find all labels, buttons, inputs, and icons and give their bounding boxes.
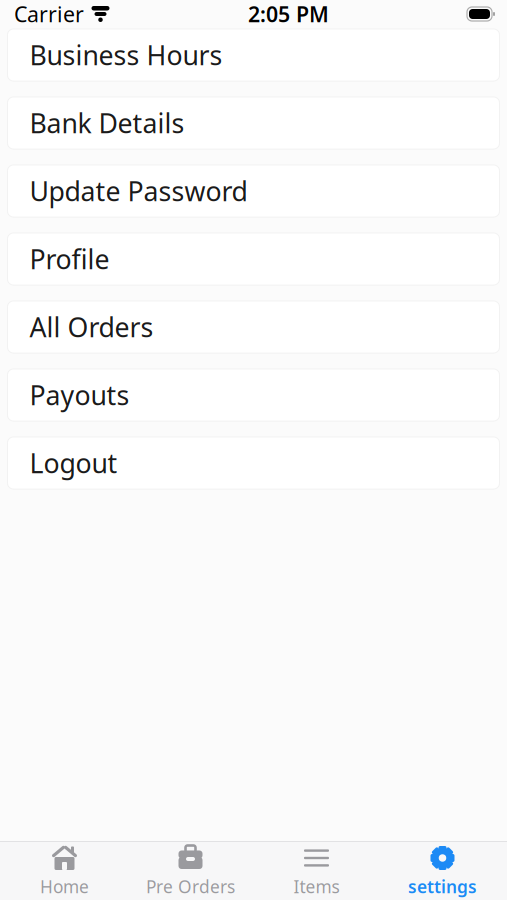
staticText: Update Password — [29, 173, 247, 209]
button[interactable]: All Orders — [7, 301, 499, 353]
staticText: Profile — [29, 241, 109, 277]
staticText: Logout — [29, 445, 117, 481]
button[interactable]: Profile — [7, 233, 499, 285]
button[interactable]: Payouts — [7, 369, 499, 421]
button[interactable]: Bank Details — [7, 97, 499, 149]
button[interactable]: Update Password — [7, 165, 499, 217]
staticText: Items — [293, 875, 339, 898]
button[interactable]: Business Hours — [7, 29, 499, 81]
staticText: Home — [40, 875, 89, 898]
staticText: Carrier — [14, 0, 84, 28]
button[interactable]: Items — [253, 842, 379, 900]
button[interactable]: Home — [1, 842, 127, 900]
staticText: All Orders — [29, 309, 153, 345]
staticText: Pre Orders — [146, 875, 235, 898]
button[interactable]: Pre Orders — [127, 842, 253, 900]
button[interactable]: settings — [379, 842, 505, 900]
staticText: Bank Details — [29, 105, 184, 141]
staticText: settings — [408, 875, 477, 898]
staticText: Business Hours — [29, 37, 222, 73]
staticText: Payouts — [29, 377, 129, 413]
button[interactable]: Logout — [7, 437, 499, 489]
staticText: 2:05 PM — [248, 0, 329, 28]
